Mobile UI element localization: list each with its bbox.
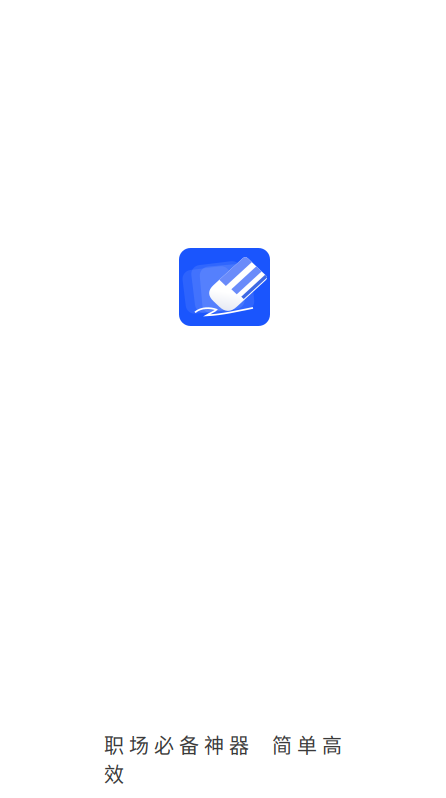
staticText: 职场必备神器 简单高效 bbox=[104, 730, 342, 788]
